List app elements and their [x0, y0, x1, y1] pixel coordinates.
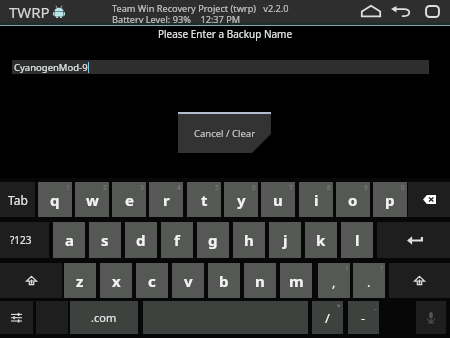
staticText: 3	[140, 183, 144, 192]
button[interactable]: Tab	[0, 182, 35, 217]
button[interactable]: g	[197, 222, 229, 258]
staticText: 9	[364, 183, 368, 192]
button[interactable]: Settings	[0, 301, 33, 334]
button[interactable]: ?123	[0, 222, 49, 258]
button[interactable]: .com	[70, 301, 138, 334]
staticText: ,	[332, 273, 336, 291]
button[interactable]: u	[261, 182, 295, 217]
button[interactable]: ,	[318, 263, 350, 298]
button[interactable]: q	[38, 182, 72, 217]
button[interactable]: d	[125, 222, 157, 258]
staticText: c	[148, 271, 156, 291]
staticText: 8	[327, 183, 331, 192]
staticText: Please Enter a Backup Name	[0, 27, 450, 41]
staticText: Battery Level: 93% 12:37 PM	[112, 13, 241, 26]
staticText: !	[346, 264, 348, 273]
button[interactable]: .	[353, 263, 385, 298]
staticText: TWRP	[9, 2, 50, 22]
staticText: 1	[66, 183, 70, 192]
button[interactable]: e	[112, 182, 146, 217]
staticText: q	[50, 190, 60, 210]
staticText: h	[244, 230, 254, 250]
staticText: Tab	[8, 192, 28, 208]
button[interactable]: c	[136, 263, 168, 298]
staticText: j	[283, 230, 288, 250]
staticText: d	[136, 230, 146, 250]
staticText: 7	[289, 183, 293, 192]
staticText: i	[314, 190, 319, 210]
button[interactable]: i	[299, 182, 333, 217]
button[interactable]: j	[269, 222, 301, 258]
staticText: u	[273, 190, 283, 210]
button[interactable]: a	[53, 222, 85, 258]
staticText: 5	[215, 183, 219, 192]
staticText: k	[316, 230, 326, 250]
staticText: o	[348, 190, 358, 210]
button[interactable]: Shift	[0, 263, 62, 298]
staticText: z	[76, 271, 84, 291]
button[interactable]: h	[233, 222, 265, 258]
button[interactable]: Home	[358, 3, 384, 19]
staticText: 2	[103, 183, 107, 192]
button[interactable]: Recent apps	[422, 3, 442, 19]
button[interactable]: Backspace	[408, 182, 450, 217]
staticText: e	[125, 190, 134, 210]
button[interactable]: -	[348, 301, 379, 334]
button[interactable]: /	[312, 301, 343, 334]
staticText: r	[163, 190, 170, 210]
staticText: 4	[177, 183, 181, 192]
staticText: ?	[380, 264, 383, 273]
button[interactable]: t	[187, 182, 221, 217]
button[interactable]: z	[64, 263, 96, 298]
staticText: v	[184, 271, 193, 291]
staticText: ?123	[10, 233, 32, 247]
button[interactable]: x	[100, 263, 132, 298]
button[interactable]: Shift	[389, 263, 450, 298]
staticText: b	[219, 271, 229, 291]
staticText: y	[237, 190, 246, 210]
staticText: .	[367, 273, 371, 291]
staticText: g	[208, 230, 218, 250]
staticText: s	[101, 230, 109, 250]
button[interactable]: CyanogenMod-9	[12, 60, 429, 74]
button[interactable]: b	[208, 263, 240, 298]
staticText: -	[361, 309, 366, 327]
button[interactable]: n	[244, 263, 276, 298]
staticText: .com	[91, 310, 117, 325]
staticText: t	[201, 190, 208, 210]
button[interactable]: r	[149, 182, 183, 217]
staticText: x	[112, 271, 121, 291]
staticText: a	[65, 230, 74, 250]
button[interactable]: p	[373, 182, 407, 217]
staticText: m	[289, 271, 304, 291]
button[interactable]: o	[336, 182, 370, 217]
button[interactable]: m	[280, 263, 312, 298]
staticText: w	[86, 190, 99, 210]
staticText: /	[325, 309, 330, 327]
button[interactable]: v	[172, 263, 204, 298]
staticText: 6	[252, 183, 256, 192]
button[interactable]: s	[89, 222, 121, 258]
button[interactable]: Cancel / Clear	[178, 112, 271, 153]
button[interactable]: l	[341, 222, 373, 258]
staticText: n	[255, 271, 265, 291]
button[interactable]: w	[75, 182, 109, 217]
staticText: f	[174, 230, 180, 250]
button[interactable]: Voice input	[416, 301, 446, 334]
staticText: Cancel / Clear	[194, 127, 256, 140]
staticText: Team Win Recovery Project (twrp) v2.2.0	[112, 2, 289, 15]
button[interactable]: f	[161, 222, 193, 258]
button[interactable]: k	[305, 222, 337, 258]
staticText: CyanogenMod-9	[14, 61, 88, 74]
staticText: _	[374, 302, 377, 311]
staticText: *	[337, 302, 341, 311]
button[interactable]: y	[224, 182, 258, 217]
button[interactable]: Enter	[377, 222, 450, 258]
staticText: 0	[401, 183, 405, 192]
staticText: p	[385, 190, 395, 210]
button[interactable]: Back	[389, 3, 414, 19]
staticText: l	[355, 230, 360, 250]
